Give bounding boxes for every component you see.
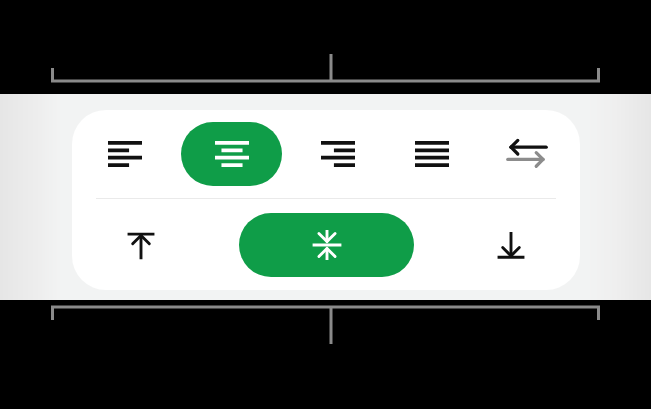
button[interactable]: Align middle: [239, 213, 414, 277]
button[interactable]: Align right: [299, 123, 377, 185]
button[interactable]: Align left: [86, 123, 164, 185]
other: Align top: [125, 228, 157, 262]
button[interactable]: Align bottom: [472, 214, 550, 276]
button[interactable]: Justify: [393, 123, 471, 185]
other: Align bottom: [495, 228, 527, 262]
button[interactable]: Align top: [102, 214, 180, 276]
button[interactable]: Text direction: [488, 123, 566, 185]
button[interactable]: Align center: [181, 122, 282, 186]
